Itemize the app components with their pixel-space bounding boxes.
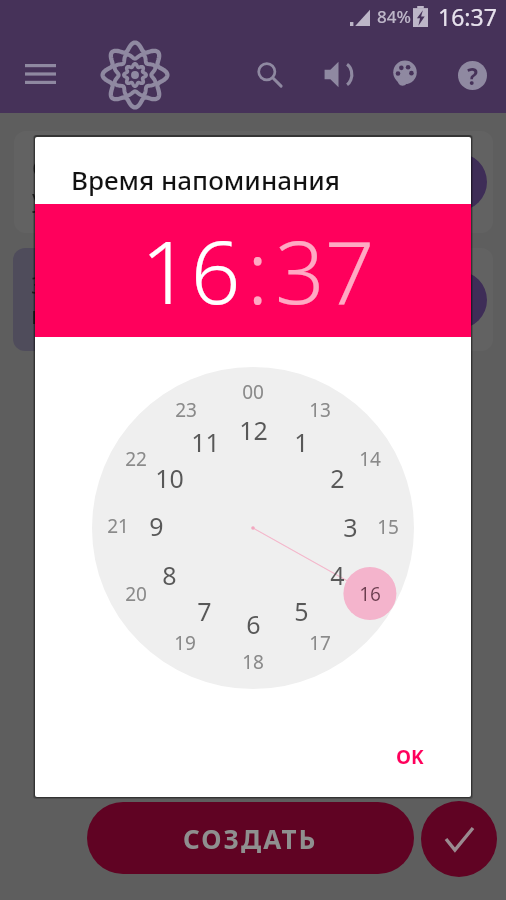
button[interactable]: Confirm — [421, 801, 497, 877]
staticText: 16 — [141, 211, 241, 329]
staticText: 16:37 — [438, 1, 497, 32]
button[interactable]: Theme — [383, 52, 427, 96]
staticText: 14 — [359, 446, 381, 472]
staticText: Время напоминания — [71, 162, 340, 197]
staticText: ? — [467, 61, 478, 89]
staticText: 84% — [377, 5, 411, 28]
staticText: OK — [396, 744, 424, 770]
button[interactable]: Help — [450, 53, 494, 97]
staticText: 2 — [330, 461, 345, 495]
staticText: : — [247, 211, 269, 329]
button[interactable]: OK — [384, 736, 436, 778]
staticText: 17 — [309, 630, 331, 656]
staticText: 6 — [246, 607, 261, 641]
button[interactable]: СОЗДАТЬ — [87, 802, 414, 874]
staticText: 00 — [242, 379, 264, 405]
staticText: СОЗДАТЬ — [183, 821, 318, 856]
staticText: 9 — [149, 509, 164, 543]
button[interactable]: Search — [247, 52, 291, 96]
staticText: 1 — [294, 425, 309, 459]
staticText: 13 — [309, 397, 331, 423]
staticText: 15 — [377, 514, 399, 540]
button[interactable]: Volume — [316, 52, 360, 96]
staticText: Забрать посылку — [31, 268, 129, 331]
staticText: 21 — [107, 513, 129, 539]
staticText: 12 — [239, 413, 268, 447]
staticText: 4 — [330, 558, 345, 592]
staticText: 11 — [191, 425, 220, 459]
button[interactable]: Забрать посылку — [13, 248, 493, 351]
staticText: 19 — [174, 630, 196, 656]
button[interactable]: Сделать уборку — [14, 131, 493, 233]
staticText: 23 — [175, 397, 197, 423]
staticText: 10 — [155, 461, 184, 495]
staticText: 37 — [275, 211, 375, 329]
staticText: 8 — [162, 558, 177, 592]
staticText: 18 — [242, 649, 264, 675]
staticText: Сделать уборку — [32, 151, 127, 214]
staticText: 7 — [197, 594, 212, 628]
staticText: 5 — [294, 594, 309, 628]
staticText: 22 — [125, 446, 147, 472]
button[interactable]: Menu — [18, 52, 62, 96]
staticText: 20 — [125, 581, 147, 607]
staticText: 3 — [343, 510, 358, 544]
staticText: 16 — [359, 581, 381, 607]
